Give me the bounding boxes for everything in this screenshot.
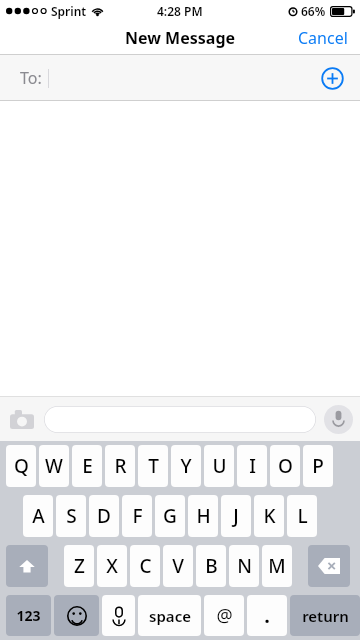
staticText: M	[268, 553, 286, 579]
button[interactable]: Cancel	[286, 22, 360, 54]
staticText: .	[264, 602, 270, 629]
button[interactable]: Voice message	[316, 397, 360, 441]
button[interactable]: P	[303, 445, 333, 487]
button[interactable]: key	[102, 595, 135, 636]
staticText: C	[139, 553, 152, 579]
staticText: 123	[16, 606, 41, 625]
button[interactable]: key	[308, 545, 350, 587]
staticText: return	[302, 606, 349, 626]
staticText: U	[212, 453, 227, 479]
button[interactable]: .	[247, 595, 287, 636]
staticText: To:	[20, 67, 42, 89]
staticText: B	[205, 553, 218, 579]
button[interactable]: X	[97, 545, 127, 587]
button[interactable]: I	[237, 445, 267, 487]
staticText: Q	[14, 453, 29, 479]
button[interactable]: Q	[6, 445, 36, 487]
button[interactable]: H	[188, 495, 218, 537]
staticText: E	[82, 453, 93, 479]
button[interactable]: U	[204, 445, 234, 487]
button[interactable]: @	[204, 595, 244, 636]
staticText: @	[216, 603, 233, 628]
button[interactable]: S	[56, 495, 86, 537]
staticText: H	[196, 503, 211, 529]
staticText: A	[32, 503, 45, 529]
button[interactable]: A	[23, 495, 53, 537]
button[interactable]: O	[270, 445, 300, 487]
button[interactable]: W	[39, 445, 69, 487]
staticText: New Message	[125, 27, 236, 49]
button[interactable]: K	[254, 495, 284, 537]
staticText: 4:28 PM	[157, 3, 203, 19]
button[interactable]: N	[229, 545, 259, 587]
button[interactable]: C	[130, 545, 160, 587]
staticText: Cancel	[298, 27, 348, 49]
staticText: F	[132, 503, 143, 529]
button[interactable]: 123	[6, 595, 51, 636]
button[interactable]: key	[54, 595, 99, 636]
button[interactable]: L	[287, 495, 317, 537]
staticText: Y	[180, 453, 192, 479]
button[interactable]: J	[221, 495, 251, 537]
staticText: I	[249, 453, 256, 479]
staticText: space	[149, 606, 191, 626]
button[interactable]: T	[138, 445, 168, 487]
button[interactable]: Camera	[0, 397, 44, 441]
button[interactable]: E	[72, 445, 102, 487]
button[interactable]: key	[6, 545, 48, 587]
button[interactable]: Y	[171, 445, 201, 487]
staticText: S	[66, 503, 77, 529]
staticText: V	[172, 553, 184, 579]
staticText: N	[237, 553, 252, 579]
staticText: J	[233, 503, 239, 529]
button[interactable]	[44, 406, 316, 433]
staticText: O	[278, 453, 293, 479]
button[interactable]: return	[290, 595, 360, 636]
staticText: T	[148, 453, 159, 479]
button[interactable]: V	[163, 545, 193, 587]
button[interactable]: space	[138, 595, 201, 636]
staticText: 66%	[301, 3, 326, 19]
staticText: Z	[74, 553, 85, 579]
button[interactable]: Z	[64, 545, 94, 587]
button[interactable]: F	[122, 495, 152, 537]
staticText: W	[45, 453, 63, 479]
staticText: R	[114, 453, 127, 479]
button[interactable]: To:	[0, 55, 360, 100]
staticText: X	[106, 553, 118, 579]
staticText: D	[97, 503, 111, 529]
button[interactable]: M	[262, 545, 292, 587]
button[interactable]: Add contact	[316, 62, 348, 94]
button[interactable]: R	[105, 445, 135, 487]
staticText: L	[297, 503, 308, 529]
staticText: P	[312, 453, 324, 479]
button[interactable]: D	[89, 495, 119, 537]
staticText: Sprint	[51, 3, 87, 19]
staticText: G	[163, 503, 177, 529]
button[interactable]: G	[155, 495, 185, 537]
button[interactable]: B	[196, 545, 226, 587]
staticText: K	[263, 503, 276, 529]
